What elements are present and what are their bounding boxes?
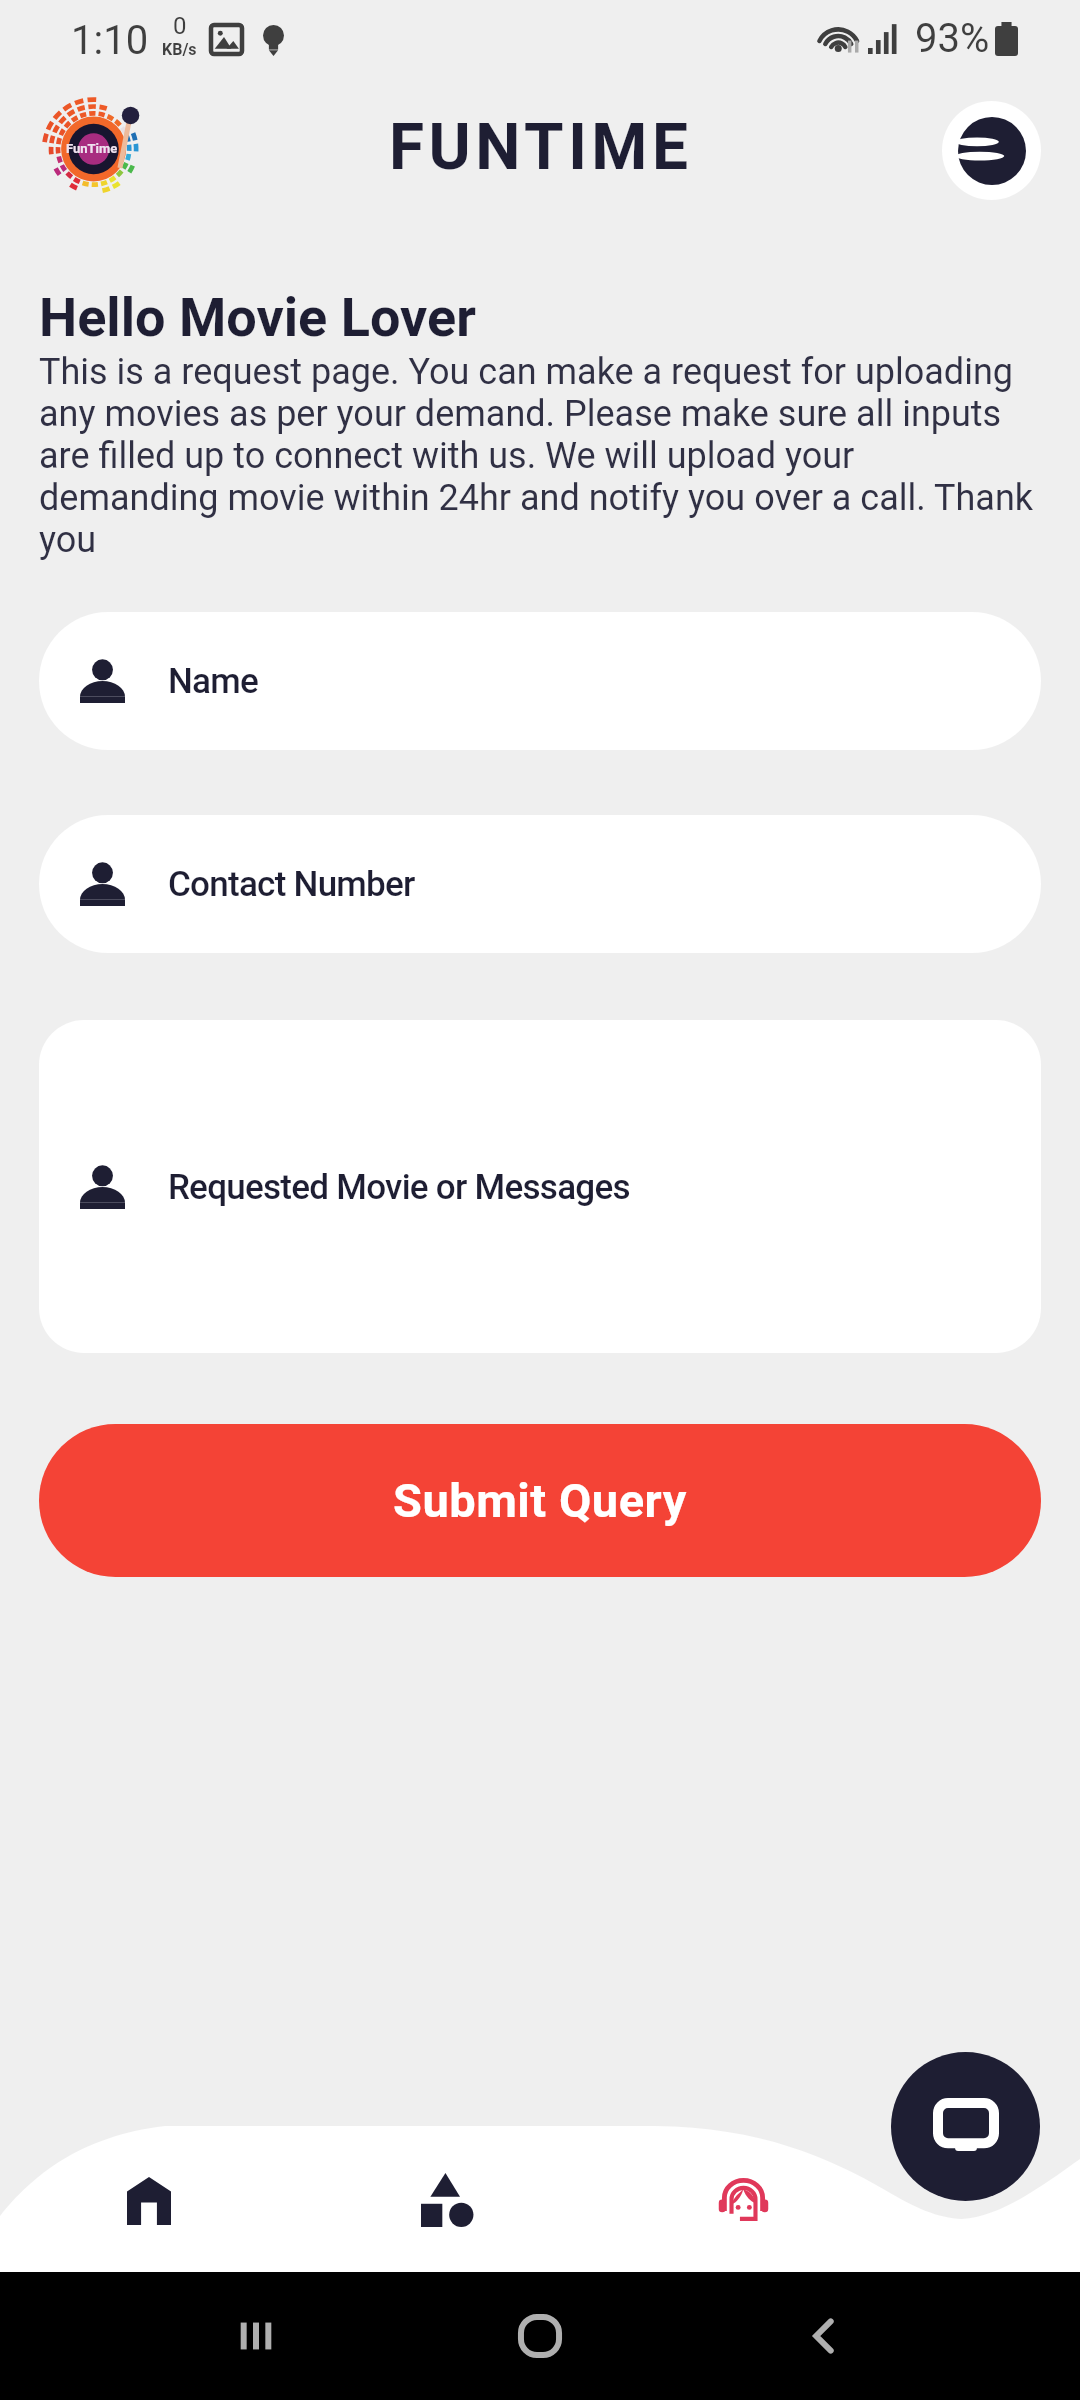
staticText: FunTime [66, 141, 118, 156]
button[interactable]: Contact Number [39, 815, 1041, 953]
button[interactable]: Name [39, 612, 1041, 750]
button[interactable]: Requested Movie or Messages [39, 1020, 1041, 1353]
button[interactable]: Support [700, 2158, 786, 2244]
button[interactable]: FunTime logo [46, 88, 158, 200]
staticText: 93% [915, 15, 990, 62]
button[interactable]: Categories [404, 2157, 490, 2243]
staticText: Name [168, 661, 259, 702]
staticText: Requested Movie or Messages [168, 1167, 630, 1208]
button[interactable]: Submit Query [39, 1424, 1041, 1577]
staticText: Contact Number [168, 864, 415, 905]
staticText: 0 [173, 12, 187, 40]
staticText: Submit Query [393, 1473, 687, 1528]
staticText: 1:10 [71, 17, 149, 64]
button[interactable]: Home [106, 2158, 192, 2244]
button[interactable]: Watch on TV [891, 2052, 1040, 2201]
staticText: KB/s [162, 40, 197, 59]
staticText: This is a request page. You can make a r… [39, 351, 1041, 561]
staticText: Hello Movie Lover [39, 286, 476, 349]
staticText: FUNTIME [389, 110, 693, 185]
button[interactable]: Menu [942, 101, 1041, 200]
